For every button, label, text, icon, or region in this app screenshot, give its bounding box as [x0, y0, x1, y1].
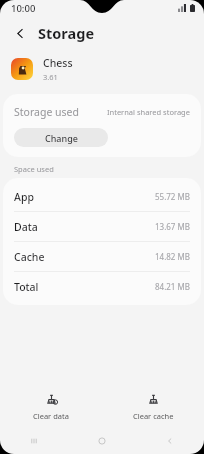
staticText: 55.72 MB: [155, 191, 190, 202]
staticText: Clear data: [33, 411, 69, 421]
button[interactable]: Total: [3, 272, 201, 301]
staticText: Internal shared storage: [107, 107, 190, 117]
button[interactable]: Back: [136, 428, 204, 454]
staticText: Clear cache: [133, 411, 174, 421]
staticText: 84.21 MB: [155, 281, 190, 292]
staticText: Data: [14, 220, 38, 234]
button[interactable]: Back: [10, 23, 30, 43]
button[interactable]: Home: [68, 428, 136, 454]
button[interactable]: Clear cache: [102, 393, 204, 421]
staticText: Chess: [43, 56, 73, 70]
staticText: 10:00: [11, 2, 36, 15]
button[interactable]: Change: [14, 128, 108, 147]
staticText: Change: [45, 132, 78, 144]
button[interactable]: Cache: [3, 242, 201, 271]
staticText: App: [14, 190, 34, 204]
staticText: Storage used: [14, 105, 79, 119]
button[interactable]: App: [3, 182, 201, 211]
staticText: Cache: [14, 250, 45, 264]
button[interactable]: Recents: [0, 428, 68, 454]
staticText: 14.82 MB: [155, 251, 190, 262]
staticText: 13.67 MB: [155, 221, 190, 232]
button[interactable]: Clear data: [0, 393, 102, 421]
staticText: Storage: [38, 23, 95, 43]
staticText: Total: [14, 280, 39, 294]
staticText: Space used: [14, 164, 54, 174]
button[interactable]: Data: [3, 212, 201, 241]
staticText: 3.61: [43, 72, 58, 82]
